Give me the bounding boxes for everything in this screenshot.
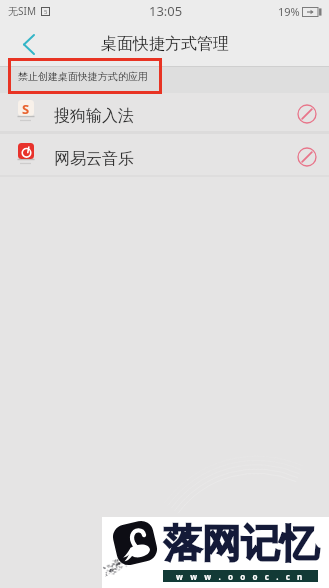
staticText: 5 bbox=[44, 8, 48, 16]
staticText: 落网记忆 bbox=[163, 519, 319, 568]
staticText: 搜狗输入法 bbox=[54, 106, 134, 126]
staticText: 无SIM bbox=[8, 4, 36, 18]
staticText: S bbox=[22, 100, 30, 116]
staticText: 13:05 bbox=[149, 2, 183, 20]
staticText: 19% bbox=[278, 4, 300, 19]
button[interactable]: S bbox=[0, 93, 329, 131]
button[interactable]: Blocked bbox=[295, 102, 319, 126]
button[interactable]: 禁止创建桌面快捷方式的应用 bbox=[8, 58, 162, 94]
button[interactable]: Blocked bbox=[295, 145, 319, 169]
staticText: w w w . o o o c . c n bbox=[176, 571, 305, 582]
staticText: 桌面快捷方式管理 bbox=[101, 34, 229, 54]
staticText: 网易云音乐 bbox=[54, 149, 134, 169]
button[interactable]: 网易云音乐 bbox=[0, 134, 329, 175]
button[interactable]: Back bbox=[12, 27, 46, 61]
staticText: 禁止创建桌面快捷方式的应用 bbox=[18, 70, 148, 83]
